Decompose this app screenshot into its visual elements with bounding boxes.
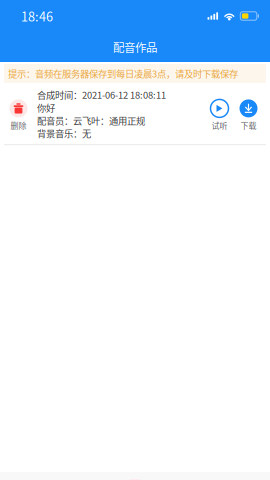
button[interactable]: 试听	[205, 99, 234, 131]
staticText: 背景音乐：无	[37, 126, 91, 140]
staticText: 提示：音频在服务器保存到每日凌晨3点，请及时下载保存	[8, 67, 238, 80]
staticText: 18:46	[21, 7, 53, 25]
staticText: 配音作品	[113, 39, 157, 55]
staticText: 合成时间：2021-06-12 18:08:11	[37, 88, 166, 101]
staticText: 试听	[211, 119, 227, 131]
staticText: 你好	[37, 101, 55, 114]
staticText: 删除	[10, 119, 26, 131]
button[interactable]: 删除	[4, 99, 33, 131]
staticText: 配音员：云飞叶：通用正规	[37, 114, 145, 127]
staticText: 下载	[240, 119, 256, 131]
button[interactable]: 下载	[234, 99, 263, 131]
